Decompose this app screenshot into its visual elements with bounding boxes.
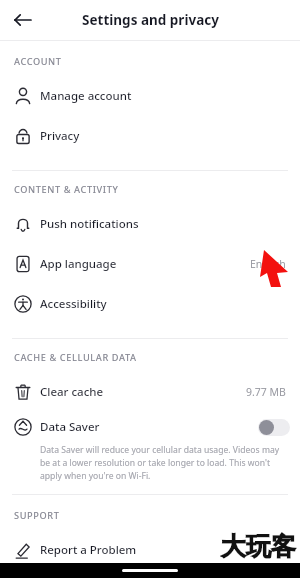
staticText: Settings and privacy <box>82 11 219 29</box>
button[interactable]: App language <box>0 244 300 284</box>
button[interactable]: Data Saver toggle <box>258 419 290 436</box>
staticText: 大玩客 <box>221 531 296 562</box>
button[interactable]: Report a Problem <box>0 530 300 570</box>
button[interactable]: Data Saver <box>0 412 300 442</box>
staticText: ACCOUNT <box>14 55 62 68</box>
staticText: Data Saver <box>40 419 100 435</box>
button[interactable]: Accessibility <box>0 284 300 324</box>
staticText: Push notifications <box>40 216 139 232</box>
staticText: CONTENT & ACTIVITY <box>14 183 119 196</box>
staticText: CACHE & CELLULAR DATA <box>14 351 137 364</box>
staticText: 9.77 MB <box>246 385 286 399</box>
staticText: SUPPORT <box>14 509 60 522</box>
button[interactable]: Manage account <box>0 76 300 116</box>
staticText: English <box>250 257 286 271</box>
staticText: Accessibility <box>40 296 107 312</box>
button[interactable]: Clear cache <box>0 372 300 412</box>
staticText: Manage account <box>40 88 132 104</box>
button[interactable]: Help Center <box>0 570 300 578</box>
button[interactable]: Privacy <box>0 116 300 156</box>
staticText: App language <box>40 256 117 272</box>
button[interactable]: Back <box>6 3 40 37</box>
staticText: Clear cache <box>40 384 104 400</box>
staticText: Privacy <box>40 128 80 144</box>
staticText: Report a Problem <box>40 542 137 558</box>
button[interactable]: Push notifications <box>0 204 300 244</box>
staticText: Data Saver will reduce your cellular dat… <box>40 444 282 481</box>
